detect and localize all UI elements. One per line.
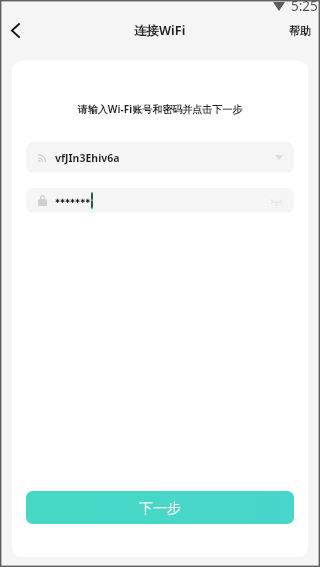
staticText: 帮助 bbox=[289, 24, 311, 38]
staticText: 5:25 bbox=[291, 0, 318, 11]
staticText: ✱✱✱✱✱✱✱ bbox=[55, 197, 91, 204]
staticText: 请输入Wi-Fi账号和密码并点击下一步 bbox=[12, 102, 308, 116]
button[interactable]: Back bbox=[0, 14, 33, 46]
button[interactable]: ✱✱✱✱✱✱✱ bbox=[26, 188, 294, 213]
other: Wi-Fi signal bbox=[273, 2, 285, 11]
button[interactable]: 下一步 bbox=[26, 491, 294, 524]
button[interactable]: Show password bbox=[269, 196, 283, 206]
button[interactable]: vfJIn3Ehiv6a bbox=[26, 142, 294, 173]
staticText: 连接WiFi bbox=[134, 22, 186, 39]
button[interactable]: 帮助 bbox=[284, 20, 316, 42]
staticText: vfJIn3Ehiv6a bbox=[55, 151, 120, 165]
staticText: 下一步 bbox=[139, 500, 181, 518]
